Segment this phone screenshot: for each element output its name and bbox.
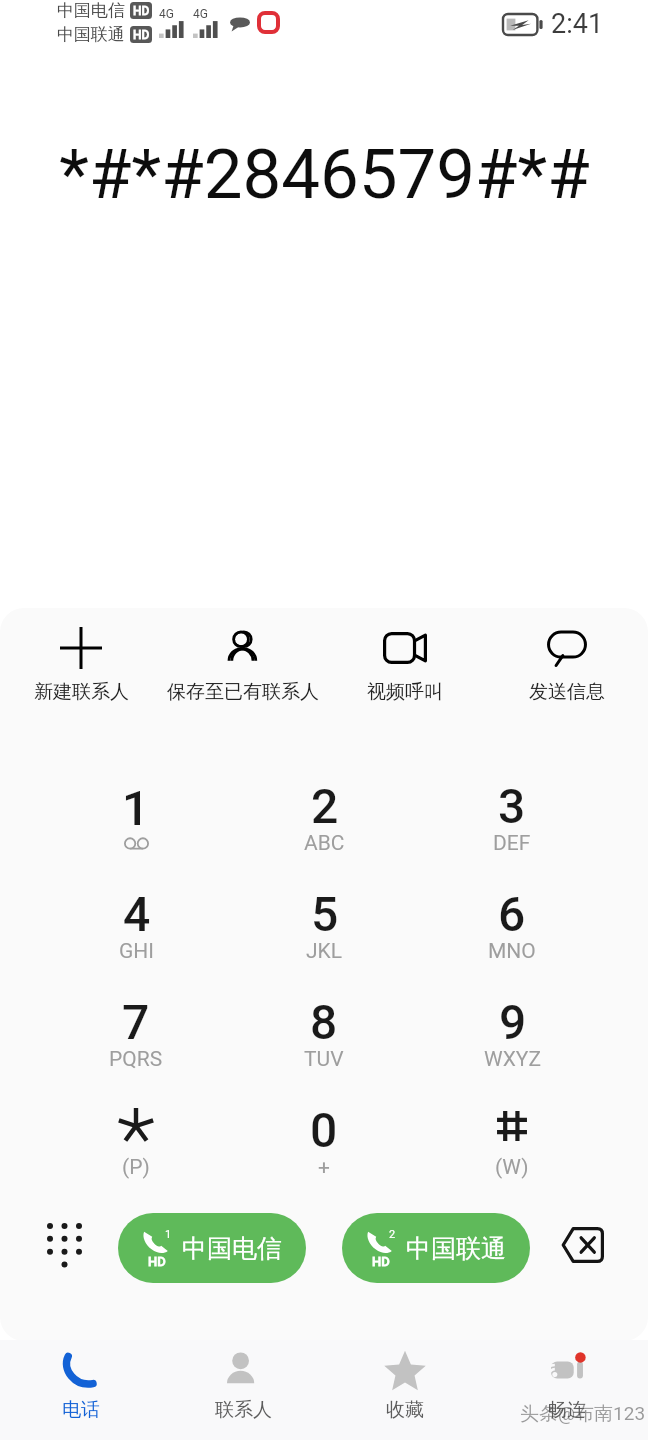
staticText: 6 (498, 886, 526, 934)
button[interactable]: 保存至已有联系人 (162, 608, 324, 718)
staticText: 中国联通 (57, 24, 125, 45)
staticText: + (318, 1155, 330, 1180)
button[interactable]: 0 (230, 1087, 418, 1195)
staticText: ABC (304, 831, 345, 856)
staticText: 中国联通 (406, 1233, 506, 1264)
button[interactable]: Backspace (550, 1213, 614, 1277)
staticText: 电话 (62, 1398, 100, 1422)
staticText: (W) (495, 1155, 529, 1180)
button[interactable]: 2 (230, 763, 418, 871)
button[interactable]: 1 (118, 1213, 306, 1283)
staticText: 4G (159, 7, 174, 21)
button[interactable]: 7 (42, 979, 230, 1087)
staticText: HD (148, 1254, 166, 1269)
staticText: 2 (311, 778, 339, 826)
staticText: 2 (389, 1228, 396, 1241)
button[interactable]: 电话 (0, 1340, 162, 1440)
button[interactable]: 2 (342, 1213, 530, 1283)
button[interactable]: 收藏 (324, 1340, 486, 1440)
staticText: TUV (304, 1047, 344, 1072)
staticText: 5 (311, 886, 339, 934)
staticText: 7 (122, 994, 150, 1042)
staticText: 3 (498, 778, 526, 826)
staticText: MNO (488, 939, 536, 964)
staticText: DEF (493, 831, 531, 856)
staticText: 畅连 (548, 1398, 586, 1422)
button[interactable]: 4 (42, 871, 230, 979)
button[interactable]: 6 (418, 871, 606, 979)
button[interactable]: 1 (42, 763, 230, 871)
staticText: 中国电信 (57, 0, 125, 21)
button[interactable]: 联系人 (162, 1340, 324, 1440)
button[interactable]: (P) (42, 1087, 230, 1195)
button[interactable]: 3 (418, 763, 606, 871)
staticText: 8 (310, 994, 338, 1042)
button[interactable]: 畅连 (486, 1340, 648, 1440)
staticText: HD (133, 4, 150, 18)
staticText: 1 (122, 780, 150, 828)
button[interactable]: 5 (230, 871, 418, 979)
staticText: JKL (306, 939, 343, 964)
button[interactable]: 新建联系人 (0, 608, 162, 718)
staticText: 视频呼叫 (367, 680, 443, 704)
staticText: HD (133, 28, 150, 42)
staticText: 9 (499, 994, 527, 1042)
button[interactable]: 发送信息 (486, 608, 648, 718)
staticText: WXYZ (484, 1047, 541, 1072)
button[interactable]: 9 (418, 979, 606, 1087)
staticText: 4 (123, 886, 151, 934)
button[interactable]: 8 (230, 979, 418, 1087)
staticText: 1 (165, 1228, 172, 1241)
staticText: 收藏 (386, 1398, 424, 1422)
staticText: 0 (310, 1102, 338, 1150)
staticText: 中国电信 (182, 1233, 282, 1264)
staticText: 头条@布南123 (520, 1402, 646, 1426)
button[interactable]: Dialpad (32, 1213, 96, 1277)
staticText: 新建联系人 (34, 680, 129, 704)
staticText: 4G (193, 7, 208, 21)
staticText: 保存至已有联系人 (167, 680, 319, 704)
staticText: (P) (122, 1155, 150, 1180)
staticText: PQRS (109, 1047, 163, 1072)
button[interactable]: 视频呼叫 (324, 608, 486, 718)
staticText: 2:41 (551, 8, 604, 40)
staticText: *#*#2846579#*# (59, 134, 590, 215)
button[interactable]: (W) (418, 1087, 606, 1195)
staticText: GHI (119, 939, 154, 964)
staticText: 联系人 (215, 1398, 272, 1422)
staticText: 发送信息 (529, 680, 605, 704)
staticText: HD (372, 1254, 390, 1269)
